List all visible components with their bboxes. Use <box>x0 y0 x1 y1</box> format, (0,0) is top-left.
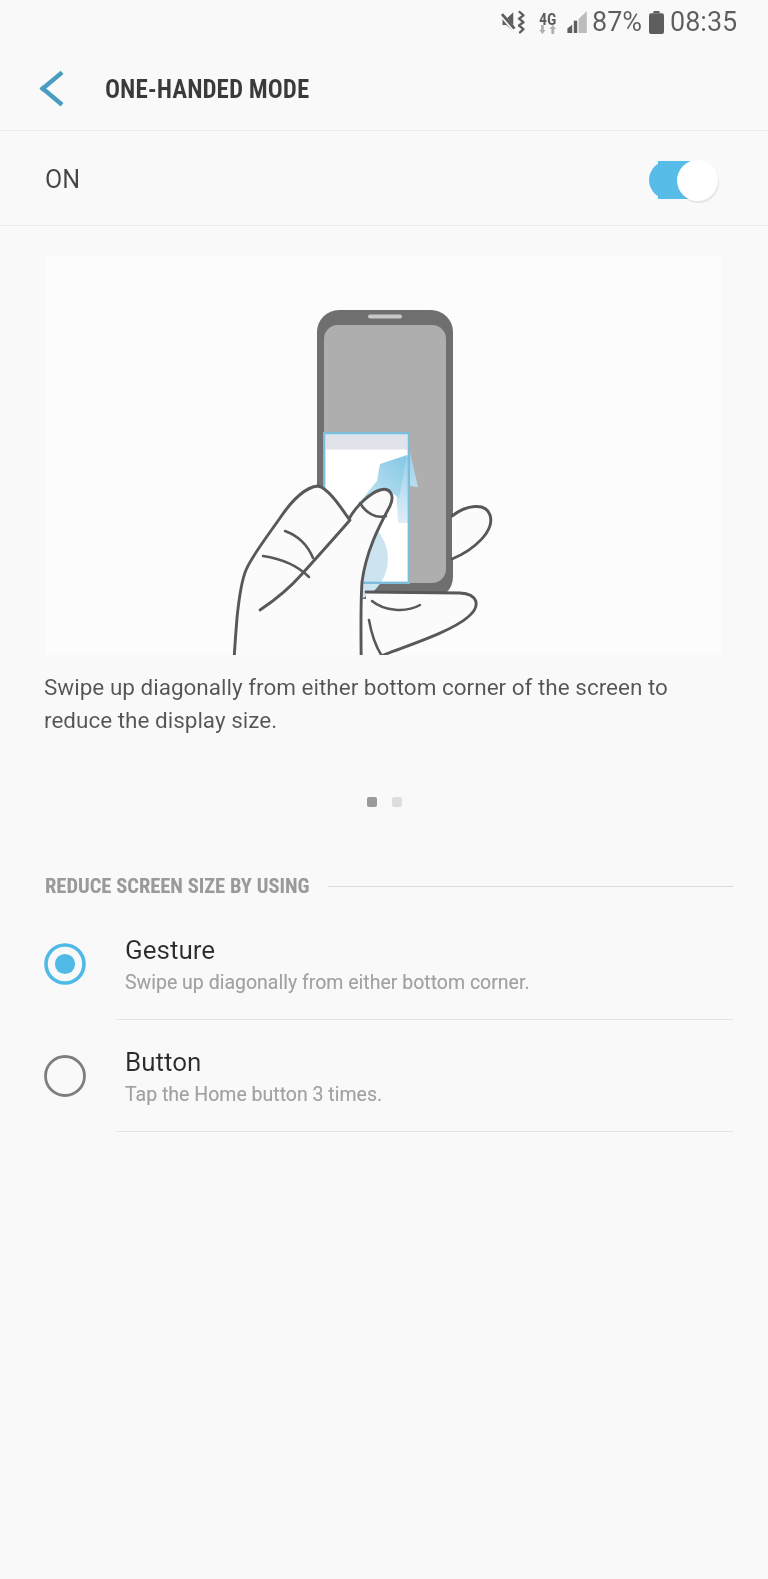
button[interactable]: Gesture <box>0 908 768 1020</box>
button[interactable]: Button <box>0 1020 768 1132</box>
staticText: Button <box>125 1047 202 1077</box>
staticText: Swipe up diagonally from either bottom c… <box>44 674 709 734</box>
staticText: 4G <box>539 10 557 29</box>
staticText: ONE-HANDED MODE <box>105 75 310 104</box>
staticText: ON <box>45 165 81 194</box>
staticText: 08:35 <box>670 6 738 38</box>
staticText: REDUCE SCREEN SIZE BY USING <box>45 874 310 898</box>
button[interactable]: Navigate up <box>31 61 83 113</box>
staticText: 87% <box>592 6 643 38</box>
button[interactable]: ON <box>0 132 768 226</box>
staticText: Gesture <box>125 935 216 965</box>
staticText: Tap the Home button 3 times. <box>125 1083 383 1106</box>
staticText: Swipe up diagonally from either bottom c… <box>125 971 530 994</box>
